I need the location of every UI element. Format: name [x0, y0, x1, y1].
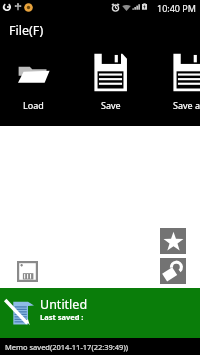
staticText: File(F): [9, 22, 44, 39]
staticText: 10:40 PM: [157, 2, 196, 14]
staticText: Last saved :: [40, 312, 84, 322]
staticText: Load: [23, 99, 44, 111]
staticText: Untitled: [40, 296, 88, 313]
button[interactable]: Save: [17, 261, 38, 282]
staticText: Save as: [173, 99, 200, 111]
staticText: Save: [101, 99, 121, 111]
button[interactable]: File(F): [9, 19, 44, 41]
button[interactable]: Unlock: [160, 258, 186, 284]
button[interactable]: Save: [72, 44, 150, 122]
button[interactable]: Favorite: [160, 228, 186, 254]
button[interactable]: Untitled: [0, 288, 200, 338]
button[interactable]: Load: [0, 44, 72, 122]
button[interactable]: Save as: [150, 44, 200, 122]
staticText: Memo saved(2014-11-17(22:39:49)): [5, 342, 128, 352]
